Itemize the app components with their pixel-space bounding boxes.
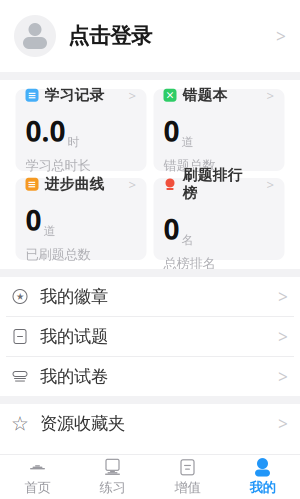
staticText: 0.0 [25, 112, 65, 149]
staticText: > [278, 325, 288, 348]
staticText: ≡ [27, 89, 36, 101]
staticText: ☆ [11, 412, 29, 435]
button[interactable]: 我的试卷 [0, 357, 300, 396]
button[interactable]: ≡ [15, 178, 146, 260]
staticText: 首页 [24, 479, 50, 496]
button[interactable]: 增值 [150, 455, 225, 499]
button[interactable]: ✕ [153, 89, 284, 171]
button[interactable]: ☆ [0, 404, 300, 443]
staticText: 错题本 [182, 86, 227, 104]
staticText: ★ [16, 291, 24, 302]
staticText: 我的试卷 [40, 366, 108, 387]
staticText: 刷题排行榜 [182, 166, 242, 202]
staticText: 时 [67, 135, 79, 149]
staticText: > [276, 24, 286, 47]
button[interactable]: ★ [0, 277, 300, 316]
staticText: ≡ [27, 178, 36, 190]
staticText: 练习 [99, 479, 125, 496]
button[interactable]: 我的试题 [0, 317, 300, 356]
staticText: > [278, 285, 288, 308]
staticText: > [128, 86, 136, 104]
staticText: 0 [163, 112, 179, 149]
staticText: 总榜排名 [163, 255, 215, 272]
staticText: 0 [25, 201, 41, 238]
staticText: 我的徽章 [40, 286, 108, 307]
staticText: 点击登录 [68, 23, 152, 49]
staticText: > [266, 175, 274, 193]
staticText: 进步曲线 [44, 175, 104, 193]
staticText: 0 [163, 210, 179, 247]
staticText: > [278, 365, 288, 388]
staticText: 已刷题总数 [25, 246, 90, 263]
button[interactable]: 点击登录 [0, 0, 300, 72]
staticText: ✕ [165, 89, 174, 101]
staticText: 资源收藏夹 [40, 413, 125, 434]
staticText: 我的试题 [40, 326, 108, 347]
button[interactable]: 刷题排行榜 [153, 178, 284, 260]
staticText: 错题总数 [163, 157, 215, 174]
staticText: 道 [43, 224, 55, 238]
button[interactable]: 练习 [75, 455, 150, 499]
staticText: > [266, 86, 274, 104]
staticText: > [128, 175, 136, 193]
staticText: 学习总时长 [25, 157, 90, 174]
button[interactable]: ≡ [15, 89, 146, 171]
button[interactable]: 我的 [225, 455, 300, 499]
staticText: 名 [181, 233, 193, 247]
staticText: 我的 [249, 479, 275, 496]
staticText: 道 [181, 135, 193, 149]
button[interactable]: 首页 [0, 455, 75, 499]
staticText: 学习记录 [44, 86, 104, 104]
staticText: 增值 [174, 479, 200, 496]
staticText: > [278, 412, 288, 435]
